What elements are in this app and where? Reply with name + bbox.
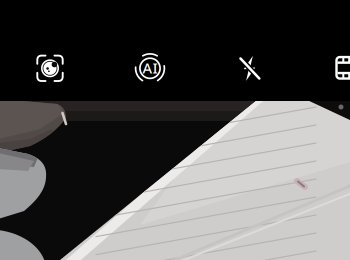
staticText: AI	[142, 58, 157, 78]
button[interactable]: Photographic styles	[136, 54, 164, 82]
button[interactable]: Night mode	[36, 54, 64, 82]
button[interactable]: Live Photo	[336, 57, 350, 78]
button[interactable]: Flash off	[235, 54, 263, 82]
